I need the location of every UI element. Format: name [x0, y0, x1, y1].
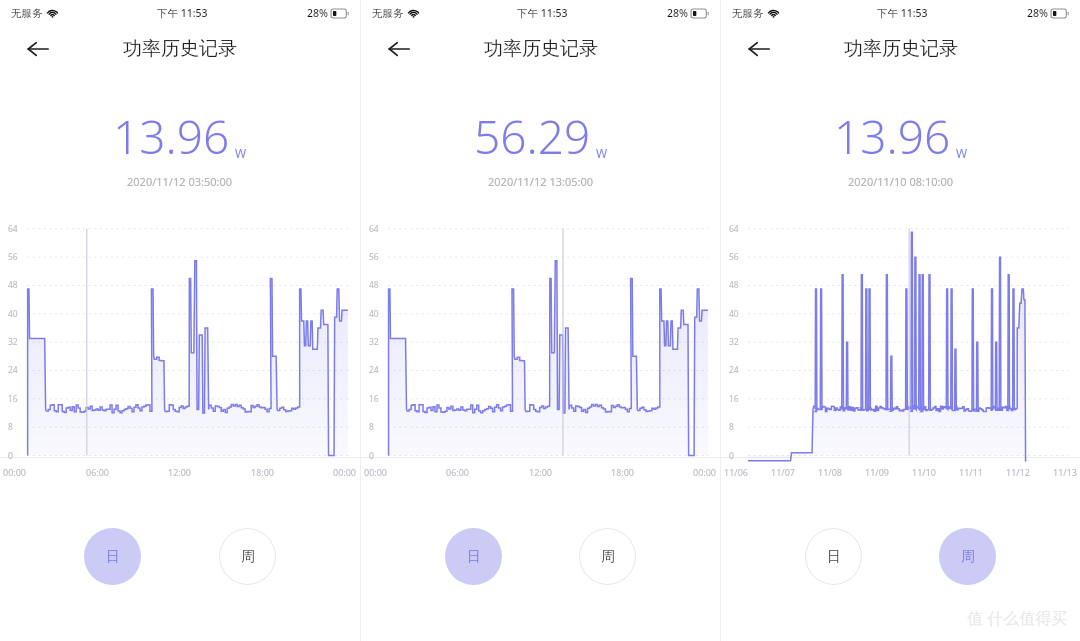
staticText: 无服务 — [732, 7, 764, 20]
staticText: 40 — [369, 308, 379, 320]
button[interactable]: 周 — [939, 528, 996, 585]
staticText: 12:00 — [168, 466, 192, 478]
staticText: 功率历史记录 — [123, 37, 237, 61]
staticText: 下午 11:53 — [877, 6, 928, 20]
staticText: 11/09 — [865, 466, 889, 478]
staticText: 11/07 — [771, 466, 795, 478]
staticText: 56 — [8, 251, 18, 263]
staticText: 40 — [8, 308, 18, 320]
staticText: 11/11 — [959, 466, 983, 478]
staticText: 0 — [729, 450, 734, 462]
staticText: 48 — [729, 279, 739, 291]
button[interactable]: Back — [741, 31, 777, 67]
staticText: 16 — [729, 393, 739, 405]
staticText: 11/08 — [818, 466, 842, 478]
staticText: 06:00 — [86, 466, 110, 478]
button[interactable]: 日 — [445, 528, 502, 585]
staticText: 40 — [729, 308, 739, 320]
staticText: 32 — [729, 336, 739, 348]
staticText: 00:00 — [333, 466, 357, 478]
button[interactable]: Back — [20, 31, 56, 67]
staticText: 0 — [369, 450, 374, 462]
staticText: 48 — [369, 279, 379, 291]
staticText: 24 — [729, 364, 739, 376]
staticText: 日 — [106, 548, 120, 566]
staticText: 56 — [369, 251, 379, 263]
staticText: 11/13 — [1053, 466, 1077, 478]
staticText: 56.29 — [474, 105, 591, 168]
staticText: 18:00 — [251, 466, 275, 478]
staticText: W — [956, 145, 968, 161]
staticText: 0 — [8, 450, 13, 462]
staticText: 32 — [8, 336, 18, 348]
staticText: 24 — [369, 364, 379, 376]
staticText: 8 — [729, 421, 734, 433]
staticText: 2020/11/12 03:50:00 — [127, 174, 233, 189]
staticText: 32 — [369, 336, 379, 348]
staticText: 11/06 — [724, 466, 748, 478]
staticText: 下午 11:53 — [157, 6, 208, 20]
staticText: 28% — [1027, 6, 1048, 20]
staticText: 24 — [8, 364, 18, 376]
staticText: 16 — [8, 393, 18, 405]
staticText: 周 — [241, 548, 255, 566]
staticText: 日 — [467, 548, 481, 566]
staticText: 功率历史记录 — [484, 37, 598, 61]
staticText: 06:00 — [446, 466, 470, 478]
staticText: 00:00 — [3, 466, 27, 478]
button[interactable]: 日 — [84, 528, 141, 585]
staticText: 功率历史记录 — [844, 37, 958, 61]
staticText: 28% — [307, 6, 328, 20]
staticText: 12:00 — [529, 466, 553, 478]
staticText: 无服务 — [11, 7, 43, 20]
staticText: W — [235, 145, 247, 161]
staticText: 2020/11/10 08:10:00 — [848, 174, 954, 189]
staticText: 13.96 — [834, 105, 951, 168]
staticText: 8 — [8, 421, 13, 433]
staticText: 下午 11:53 — [517, 6, 568, 20]
staticText: 日 — [827, 548, 841, 566]
staticText: 周 — [601, 548, 615, 566]
staticText: 无服务 — [372, 7, 404, 20]
staticText: 00:00 — [364, 466, 388, 478]
staticText: 56 — [729, 251, 739, 263]
staticText: 11/12 — [1006, 466, 1030, 478]
button[interactable]: 周 — [579, 528, 636, 585]
button[interactable]: 周 — [219, 528, 276, 585]
staticText: 48 — [8, 279, 18, 291]
staticText: 00:00 — [693, 466, 717, 478]
staticText: 2020/11/12 13:05:00 — [488, 174, 594, 189]
button[interactable]: 日 — [805, 528, 862, 585]
staticText: 64 — [8, 223, 18, 235]
staticText: 8 — [369, 421, 374, 433]
staticText: 64 — [369, 223, 379, 235]
staticText: 64 — [729, 223, 739, 235]
staticText: 16 — [369, 393, 379, 405]
button[interactable]: Back — [381, 31, 417, 67]
staticText: 11/10 — [912, 466, 936, 478]
staticText: 28% — [667, 6, 688, 20]
staticText: 13.96 — [113, 105, 230, 168]
staticText: 周 — [961, 548, 975, 566]
staticText: 18:00 — [611, 466, 635, 478]
staticText: W — [596, 145, 608, 161]
staticText: 值 什么值得买 — [967, 607, 1068, 629]
